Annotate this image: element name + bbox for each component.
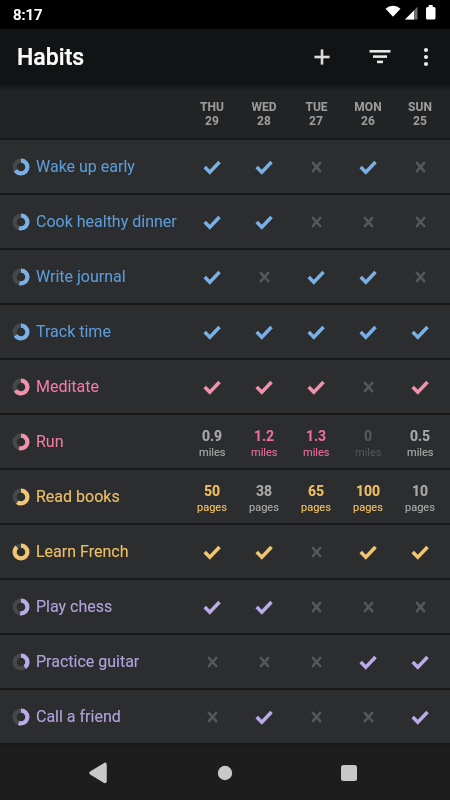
button[interactable] <box>238 525 290 578</box>
button[interactable]: 10 <box>394 470 446 523</box>
button[interactable] <box>394 195 446 248</box>
button[interactable]: Practice guitar <box>0 635 450 688</box>
button[interactable] <box>290 305 342 358</box>
button[interactable] <box>186 525 238 578</box>
button[interactable]: Read books <box>0 470 450 523</box>
button[interactable]: 50 <box>186 470 238 523</box>
staticText: 0 <box>364 428 373 444</box>
button[interactable] <box>394 580 446 633</box>
staticText: TUE <box>305 100 328 114</box>
button[interactable] <box>186 140 238 193</box>
button[interactable] <box>342 635 394 688</box>
button[interactable] <box>342 580 394 633</box>
staticText: Practice guitar <box>36 652 140 671</box>
button[interactable] <box>342 360 394 413</box>
button[interactable] <box>394 525 446 578</box>
button[interactable] <box>394 360 446 413</box>
button[interactable] <box>290 195 342 248</box>
button[interactable]: Cook healthy dinner <box>0 195 450 248</box>
button[interactable] <box>201 749 249 797</box>
button[interactable] <box>325 749 373 797</box>
staticText: pages <box>353 501 383 514</box>
button[interactable] <box>238 140 290 193</box>
button[interactable] <box>186 690 238 743</box>
button[interactable] <box>238 305 290 358</box>
button[interactable] <box>186 635 238 688</box>
button[interactable] <box>394 140 446 193</box>
button[interactable] <box>290 690 342 743</box>
button[interactable] <box>290 580 342 633</box>
button[interactable]: Play chess <box>0 580 450 633</box>
button[interactable] <box>186 580 238 633</box>
button[interactable] <box>342 250 394 303</box>
staticText: 65 <box>308 483 325 499</box>
staticText: miles <box>199 446 226 459</box>
staticText: Play chess <box>36 597 113 616</box>
button[interactable] <box>360 29 400 85</box>
button[interactable]: 0.9 <box>186 415 238 468</box>
button[interactable]: 65 <box>290 470 342 523</box>
staticText: Read books <box>36 487 120 506</box>
button[interactable] <box>186 305 238 358</box>
button[interactable]: 38 <box>238 470 290 523</box>
button[interactable] <box>238 360 290 413</box>
button[interactable] <box>342 305 394 358</box>
button[interactable]: TUE <box>290 100 342 128</box>
button[interactable]: 0 <box>342 415 394 468</box>
button[interactable]: Run <box>0 415 450 468</box>
button[interactable]: MON <box>342 100 394 128</box>
button[interactable] <box>238 580 290 633</box>
button[interactable]: Track time <box>0 305 450 358</box>
button[interactable]: Call a friend <box>0 690 450 743</box>
button[interactable]: Wake up early <box>0 140 450 193</box>
button[interactable] <box>406 29 446 85</box>
staticText: pages <box>301 501 331 514</box>
button[interactable] <box>186 250 238 303</box>
button[interactable] <box>238 635 290 688</box>
staticText: 29 <box>205 114 219 128</box>
staticText: Call a friend <box>36 707 121 726</box>
button[interactable]: Write journal <box>0 250 450 303</box>
staticText: pages <box>405 501 435 514</box>
button[interactable] <box>290 360 342 413</box>
button[interactable]: Meditate <box>0 360 450 413</box>
staticText: 100 <box>356 483 381 499</box>
button[interactable] <box>394 250 446 303</box>
button[interactable]: 0.5 <box>394 415 446 468</box>
button[interactable]: SUN <box>394 100 446 128</box>
button[interactable] <box>290 250 342 303</box>
button[interactable] <box>342 140 394 193</box>
staticText: Run <box>36 432 64 451</box>
button[interactable] <box>186 360 238 413</box>
button[interactable]: 100 <box>342 470 394 523</box>
button[interactable]: 1.3 <box>290 415 342 468</box>
staticText: 1.3 <box>306 428 327 444</box>
button[interactable]: 1.2 <box>238 415 290 468</box>
staticText: Write journal <box>36 267 126 286</box>
button[interactable] <box>290 635 342 688</box>
button[interactable] <box>186 195 238 248</box>
staticText: 38 <box>256 483 273 499</box>
staticText: 1.2 <box>254 428 275 444</box>
button[interactable] <box>394 635 446 688</box>
button[interactable] <box>342 525 394 578</box>
button[interactable] <box>342 690 394 743</box>
button[interactable]: THU <box>186 100 238 128</box>
staticText: Wake up early <box>36 157 135 176</box>
staticText: miles <box>303 446 330 459</box>
button[interactable] <box>394 305 446 358</box>
button[interactable] <box>238 195 290 248</box>
button[interactable] <box>290 525 342 578</box>
button[interactable] <box>238 250 290 303</box>
staticText: 0.9 <box>202 428 223 444</box>
button[interactable] <box>290 140 342 193</box>
button[interactable] <box>238 690 290 743</box>
staticText: 27 <box>309 114 323 128</box>
staticText: THU <box>200 100 224 114</box>
button[interactable]: Learn French <box>0 525 450 578</box>
button[interactable]: WED <box>238 100 290 128</box>
button[interactable] <box>74 749 122 797</box>
button[interactable] <box>302 29 342 85</box>
button[interactable] <box>394 690 446 743</box>
button[interactable] <box>342 195 394 248</box>
